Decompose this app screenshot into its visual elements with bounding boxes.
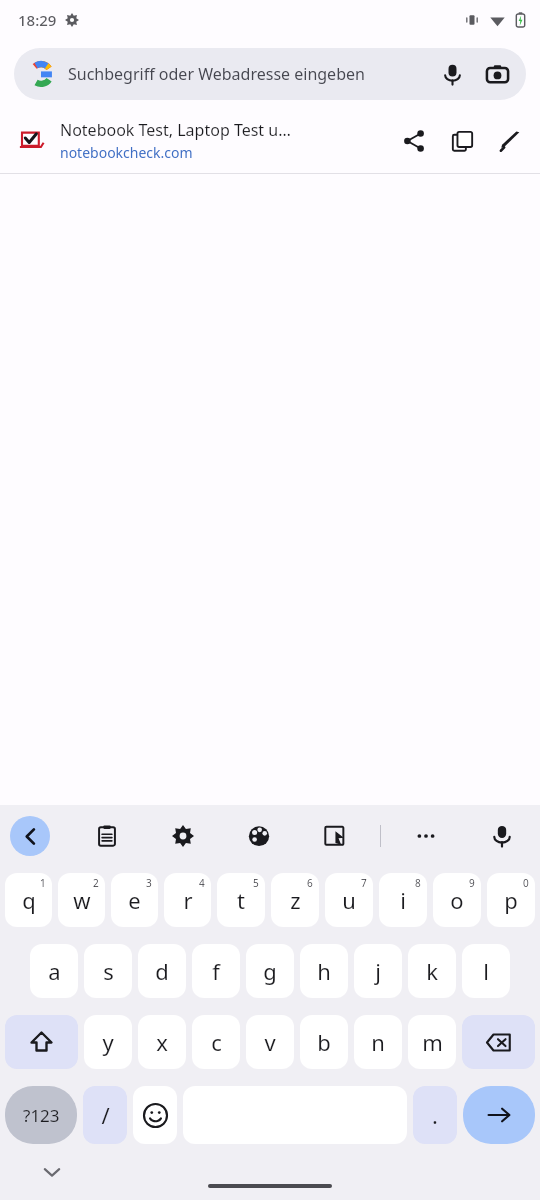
button[interactable]: Copy	[438, 117, 486, 165]
button[interactable]: r	[164, 873, 211, 927]
button[interactable]: Hide keyboard	[38, 1158, 66, 1186]
staticText: a	[48, 956, 61, 986]
button[interactable]: h	[300, 944, 348, 998]
staticText: d	[155, 956, 169, 986]
button[interactable]: o	[433, 873, 481, 927]
button[interactable]: ?123	[5, 1086, 77, 1144]
button[interactable]: Backspace	[462, 1015, 535, 1069]
button[interactable]: Sticker	[315, 816, 355, 856]
button[interactable]: e	[111, 873, 158, 927]
button[interactable]: c	[192, 1015, 240, 1069]
staticText: v	[264, 1027, 276, 1057]
staticText: 3	[146, 876, 152, 890]
button[interactable]: z	[271, 873, 319, 927]
button[interactable]: t	[217, 873, 265, 927]
button[interactable]: w	[58, 873, 105, 927]
staticText: 4	[199, 876, 205, 890]
button[interactable]: Back	[10, 816, 50, 856]
button[interactable]: More options	[406, 816, 446, 856]
staticText: ?123	[23, 1104, 60, 1127]
staticText: o	[450, 885, 464, 915]
button[interactable]: Clipboard	[87, 816, 127, 856]
button[interactable]: p	[487, 873, 535, 927]
button[interactable]: Share	[390, 117, 438, 165]
staticText: z	[290, 885, 301, 915]
button[interactable]: Voice search	[430, 52, 474, 96]
button[interactable]: Shift	[5, 1015, 78, 1069]
button[interactable]: b	[300, 1015, 348, 1069]
button[interactable]: x	[138, 1015, 186, 1069]
button[interactable]: n	[354, 1015, 402, 1069]
staticText: y	[102, 1027, 114, 1057]
staticText: r	[183, 885, 193, 915]
staticText: g	[263, 956, 277, 986]
staticText: t	[237, 885, 245, 915]
button[interactable]: q	[5, 873, 52, 927]
button[interactable]: d	[138, 944, 186, 998]
staticText: m	[422, 1027, 443, 1057]
staticText: w	[73, 885, 91, 915]
button[interactable]: v	[246, 1015, 294, 1069]
staticText: p	[504, 885, 518, 915]
staticText: 2	[93, 876, 99, 890]
staticText: i	[400, 885, 406, 915]
button[interactable]: Suchbegriff oder Webadresse eingeben	[14, 48, 526, 100]
staticText: j	[375, 956, 381, 986]
staticText: n	[371, 1027, 385, 1057]
button[interactable]: Theme	[239, 816, 279, 856]
staticText: Notebook Test, Laptop Test u…	[60, 119, 291, 141]
button[interactable]: Notebook Test, Laptop Test u…	[0, 108, 540, 173]
staticText: f	[212, 956, 220, 986]
staticText: b	[317, 1027, 331, 1057]
staticText: 9	[469, 876, 475, 890]
button[interactable]: Emoji	[133, 1086, 177, 1144]
button[interactable]: f	[192, 944, 240, 998]
staticText: h	[317, 956, 331, 986]
button[interactable]: /	[83, 1086, 127, 1144]
staticText: 8	[415, 876, 421, 890]
button[interactable]: m	[408, 1015, 456, 1069]
button[interactable]: .	[413, 1086, 457, 1144]
staticText: Suchbegriff oder Webadresse eingeben	[68, 63, 430, 85]
button[interactable]: s	[84, 944, 132, 998]
button[interactable]: Search by image	[474, 51, 520, 97]
staticText: q	[22, 885, 36, 915]
button[interactable]: Settings	[163, 816, 203, 856]
button[interactable]: j	[354, 944, 402, 998]
staticText: s	[103, 956, 114, 986]
button[interactable]: a	[30, 944, 78, 998]
button[interactable]: u	[325, 873, 373, 927]
staticText: .	[432, 1100, 438, 1130]
staticText: 18:29	[18, 10, 57, 30]
button[interactable]: i	[379, 873, 427, 927]
staticText: c	[211, 1027, 222, 1057]
button[interactable]: y	[84, 1015, 132, 1069]
button[interactable]: l	[462, 944, 510, 998]
button[interactable]: Edit	[486, 117, 534, 165]
staticText: u	[342, 885, 356, 915]
staticText: k	[426, 956, 438, 986]
button[interactable]: k	[408, 944, 456, 998]
staticText: x	[156, 1027, 168, 1057]
staticText: 0	[523, 876, 529, 890]
staticText: l	[483, 956, 489, 986]
button[interactable]: g	[246, 944, 294, 998]
staticText: e	[128, 885, 141, 915]
staticText: 7	[361, 876, 367, 890]
button[interactable]: Voice input	[482, 816, 522, 856]
staticText: 1	[40, 876, 46, 890]
staticText: 6	[307, 876, 313, 890]
staticText: notebookcheck.com	[60, 143, 193, 162]
button[interactable]: Go	[463, 1086, 535, 1144]
staticText: 5	[253, 876, 259, 890]
staticText: /	[101, 1100, 110, 1130]
